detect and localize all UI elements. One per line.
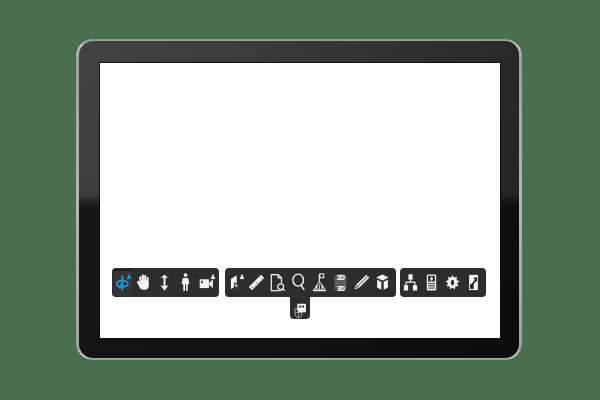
- button[interactable]: Select: [225, 268, 246, 297]
- staticText: 3D: [337, 284, 345, 293]
- button[interactable]: Measure: [246, 268, 267, 297]
- other: View tools: [400, 268, 486, 297]
- button[interactable]: Orbit: [112, 268, 133, 297]
- button[interactable]: Draw: [351, 268, 372, 297]
- button[interactable]: Panels: [421, 268, 442, 297]
- button[interactable]: Move up down: [154, 268, 175, 297]
- other: Modelling tools: [225, 268, 396, 297]
- button[interactable]: Walk: [175, 268, 196, 297]
- button[interactable]: Zoom: [288, 268, 309, 297]
- button[interactable]: Pan: [133, 268, 154, 297]
- button[interactable]: Hierarchy: [400, 268, 421, 297]
- button[interactable]: Expand: [463, 268, 484, 297]
- button[interactable]: Toggle 2D 3D: [330, 268, 351, 297]
- staticText: 2D: [337, 273, 345, 282]
- button[interactable]: Model: [372, 268, 393, 297]
- button[interactable]: More tools: [290, 290, 310, 319]
- button[interactable]: Terrain: [309, 268, 330, 297]
- button[interactable]: Inspect document: [267, 268, 288, 297]
- other: Navigation tools: [112, 268, 219, 297]
- button[interactable]: Settings: [442, 268, 463, 297]
- button[interactable]: Camera view: [196, 268, 217, 297]
